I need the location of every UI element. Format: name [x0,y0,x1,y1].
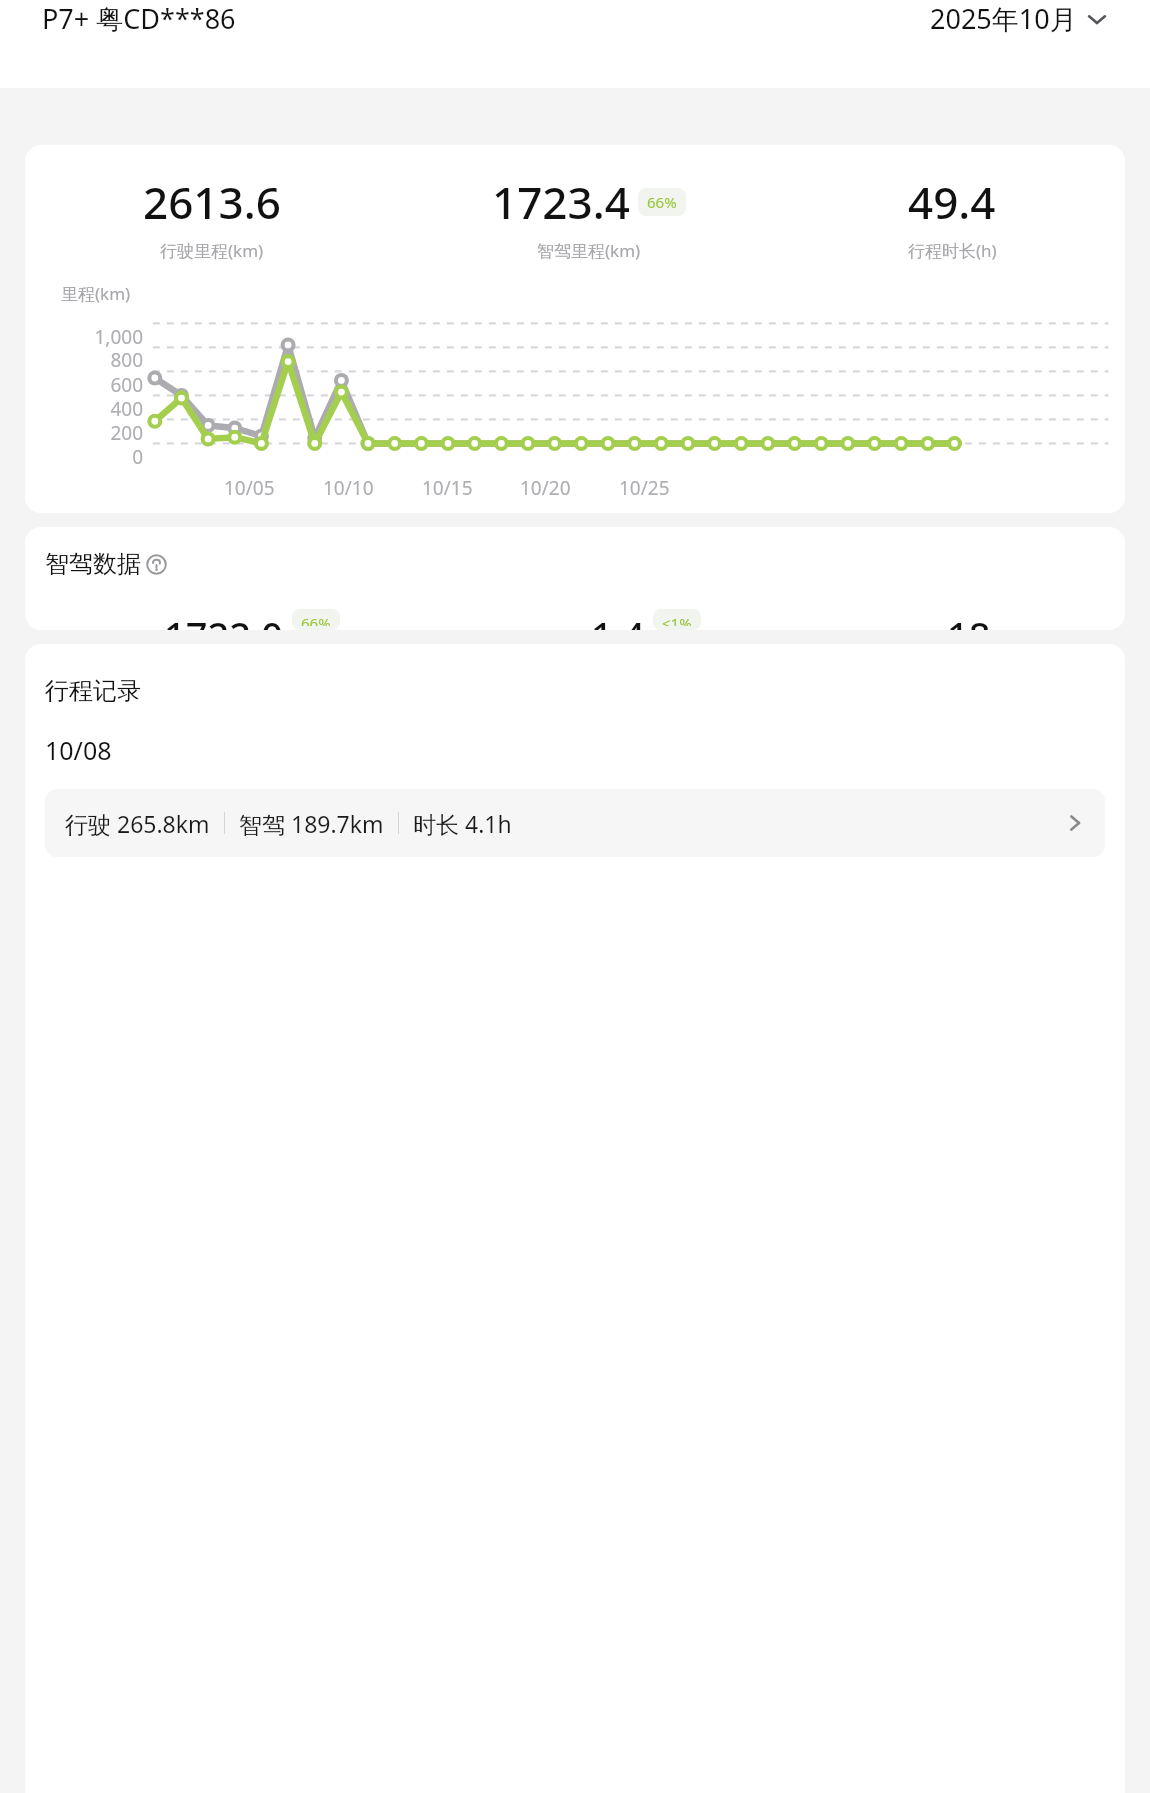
staticText: 行驶里程(km) [160,239,264,262]
staticText: 10/20 [520,475,571,501]
button[interactable]: P7+ 粤CD***86 [42,0,236,37]
staticText: 1.4 [591,609,645,630]
staticText: 10/15 [422,475,473,501]
staticText: 66% [647,192,677,212]
staticText: 里程(km) [61,282,131,305]
staticText: 2613.6 [143,172,281,232]
staticText: 行程记录 [45,676,141,706]
staticText: 800 [110,347,143,372]
button[interactable]: 智驾数据 [45,549,167,579]
staticText: 时长 4.1h [413,808,512,839]
staticText: 10/25 [619,475,670,501]
staticText: 49.4 [908,172,996,232]
staticText: 18 [947,609,991,630]
other: Open trip details [1065,813,1085,833]
staticText: 1,000 [94,324,143,347]
other: Help about smart driving data [146,554,167,575]
staticText: 智驾 189.7km [239,808,384,839]
staticText: 1722.0 [164,609,284,630]
staticText: 600 [110,372,143,396]
staticText: 行程时长(h) [908,239,997,262]
button[interactable]: 行驶 265.8km [45,789,1105,857]
button[interactable]: 2025年10月 [930,0,1108,37]
staticText: <1% [662,613,692,626]
staticText: 1723.4 [492,172,630,232]
staticText: 10/10 [323,475,374,501]
staticText: 0 [132,444,143,468]
staticText: 智驾里程(km) [537,239,641,262]
staticText: 10/08 [45,733,112,767]
staticText: 400 [110,396,143,420]
staticText: 智驾数据 [45,549,141,579]
staticText: 行驶 265.8km [65,808,210,839]
staticText: 200 [110,420,143,444]
staticText: 10/05 [224,475,275,501]
staticText: 66% [301,613,331,626]
staticText: 2025年10月 [930,0,1077,37]
other: Select month [1086,8,1108,30]
